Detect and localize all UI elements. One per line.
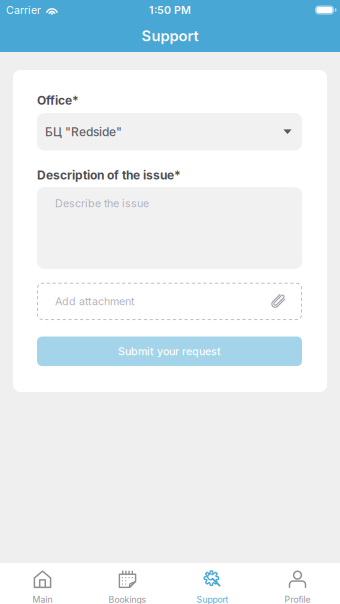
staticText: Support — [196, 594, 228, 604]
button[interactable]: Profile — [255, 563, 340, 604]
button[interactable]: БЦ "Redside" — [37, 113, 302, 150]
button[interactable]: Support — [170, 563, 255, 604]
staticText: БЦ "Redside" — [45, 124, 122, 139]
button[interactable]: Add attachment — [37, 283, 302, 320]
staticText: Support — [141, 27, 198, 45]
button[interactable]: Bookings — [85, 563, 170, 604]
staticText: Office* — [37, 93, 79, 107]
staticText: Profile — [284, 594, 310, 604]
staticText: Carrier — [6, 3, 41, 16]
button[interactable]: Submit your request — [37, 336, 302, 366]
button[interactable]: Describe the issue — [37, 187, 302, 269]
staticText: Add attachment — [55, 295, 134, 308]
staticText: Describe the issue — [55, 197, 149, 210]
button[interactable]: Main — [0, 563, 85, 604]
staticText: Bookings — [108, 594, 146, 604]
staticText: 1:50 PM — [149, 3, 191, 16]
staticText: Main — [32, 594, 52, 604]
staticText: Submit your request — [118, 345, 221, 358]
staticText: Description of the issue* — [37, 168, 181, 182]
